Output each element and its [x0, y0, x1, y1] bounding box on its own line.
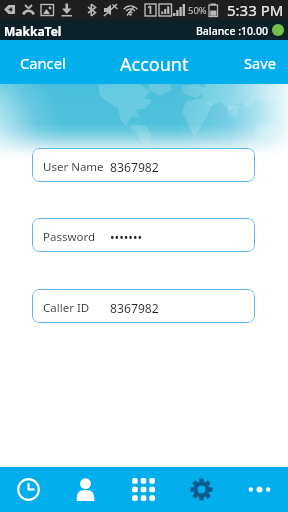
staticText: 50%	[188, 4, 207, 17]
staticText: Caller ID	[43, 300, 90, 316]
staticText: Password	[43, 229, 96, 245]
button[interactable]: Contacts	[57, 467, 114, 512]
button[interactable]: Cancel	[0, 40, 78, 84]
button[interactable]: Keypad	[114, 467, 172, 512]
staticText: Balance :10.00	[196, 24, 268, 38]
staticText: 8367982	[110, 300, 159, 317]
staticText: Cancel	[20, 53, 66, 73]
staticText: •••••••	[110, 229, 143, 246]
button[interactable]: Settings	[172, 467, 230, 512]
staticText: Account	[120, 52, 189, 77]
button[interactable]: Recent calls	[0, 467, 57, 512]
button[interactable]	[32, 218, 255, 252]
staticText: MakkaTel	[4, 23, 62, 39]
staticText: Save	[244, 53, 277, 73]
button[interactable]: Save	[232, 40, 288, 84]
staticText: 5:33 PM	[227, 0, 284, 20]
button[interactable]	[32, 148, 255, 182]
staticText: 8367982	[110, 159, 159, 176]
staticText: User Name	[43, 159, 104, 175]
button[interactable]: More	[230, 467, 288, 512]
button[interactable]	[32, 289, 255, 323]
